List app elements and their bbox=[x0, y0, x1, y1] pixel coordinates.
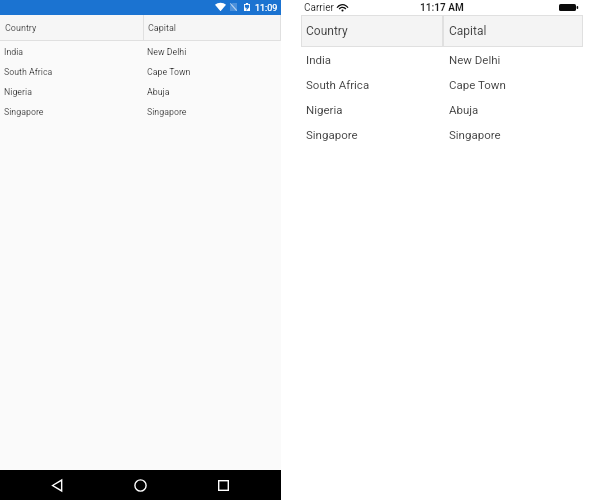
staticText: Country bbox=[306, 24, 348, 38]
staticText: Cape Town bbox=[147, 67, 191, 77]
staticText: Singapore bbox=[4, 107, 44, 117]
staticText: South Africa bbox=[4, 67, 53, 77]
staticText: Nigeria bbox=[306, 103, 343, 116]
staticText: New Delhi bbox=[147, 47, 187, 57]
staticText: 11:17 AM bbox=[420, 2, 464, 14]
staticText: Cape Town bbox=[449, 78, 506, 91]
staticText: Capital bbox=[449, 24, 487, 38]
staticText: New Delhi bbox=[449, 53, 501, 66]
staticText: Abuja bbox=[449, 103, 479, 116]
button[interactable]: Back bbox=[45, 470, 69, 500]
button[interactable]: Country bbox=[301, 15, 443, 47]
button[interactable]: Singapore bbox=[0, 101, 281, 121]
button[interactable]: Country bbox=[0, 15, 143, 41]
button[interactable]: South Africa bbox=[301, 72, 583, 97]
staticText: Singapore bbox=[306, 128, 358, 141]
staticText: Carrier bbox=[304, 2, 334, 14]
button[interactable]: Nigeria bbox=[0, 81, 281, 101]
button[interactable]: Recent apps bbox=[211, 470, 235, 500]
button[interactable]: India bbox=[0, 41, 281, 61]
staticText: South Africa bbox=[306, 78, 370, 91]
button[interactable]: Capital bbox=[144, 15, 280, 41]
staticText: Abuja bbox=[147, 87, 170, 97]
staticText: Singapore bbox=[449, 128, 501, 141]
button[interactable]: Capital bbox=[443, 15, 583, 47]
staticText: 11:09 bbox=[255, 3, 278, 14]
staticText: Capital bbox=[148, 23, 177, 34]
staticText: Country bbox=[5, 23, 37, 34]
button[interactable]: Nigeria bbox=[301, 97, 583, 122]
staticText: India bbox=[4, 47, 24, 57]
button[interactable]: South Africa bbox=[0, 61, 281, 81]
staticText: Singapore bbox=[147, 107, 187, 117]
button[interactable]: Singapore bbox=[301, 122, 583, 147]
staticText: Nigeria bbox=[4, 87, 32, 97]
button[interactable]: Home bbox=[128, 470, 152, 500]
button[interactable]: India bbox=[301, 47, 583, 72]
staticText: India bbox=[306, 53, 332, 66]
